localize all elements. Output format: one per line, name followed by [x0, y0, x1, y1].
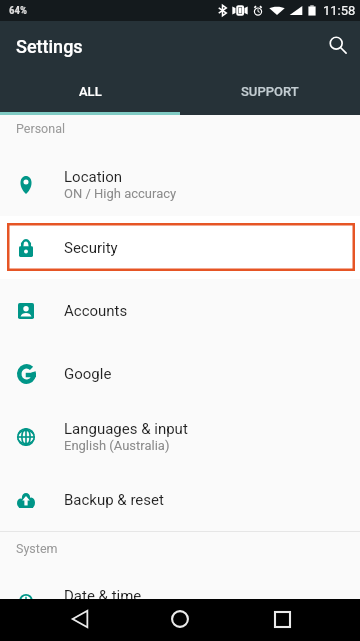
staticText: 11:58 [323, 3, 356, 18]
staticText: Accounts [64, 302, 128, 320]
button[interactable]: Search [316, 23, 360, 67]
staticText: SUPPORT [241, 84, 299, 99]
button[interactable]: Security [0, 216, 360, 279]
button[interactable]: Languages & input [0, 405, 360, 468]
button[interactable]: Home [150, 599, 210, 641]
button[interactable]: Back [50, 599, 110, 641]
button[interactable]: Backup & reset [0, 468, 360, 531]
staticText: System [16, 541, 58, 556]
staticText: Date & time [64, 587, 142, 599]
staticText: Security [64, 239, 118, 257]
button[interactable]: Location [0, 153, 360, 216]
staticText: Settings [16, 36, 83, 57]
button[interactable]: Recents [252, 599, 312, 641]
button[interactable]: Accounts [0, 279, 360, 342]
staticText: ALL [79, 84, 102, 99]
staticText: Personal [16, 121, 65, 136]
staticText: Backup & reset [64, 491, 164, 509]
button[interactable]: ALL [0, 71, 180, 115]
staticText: 64% [9, 4, 28, 17]
staticText: ON / High accuracy [64, 186, 177, 201]
button[interactable]: Google [0, 342, 360, 405]
staticText: Google [64, 365, 112, 383]
button[interactable]: Date & time [0, 587, 360, 599]
staticText: English (Australia) [64, 438, 170, 453]
button[interactable]: SUPPORT [180, 71, 360, 115]
staticText: Languages & input [64, 420, 188, 438]
staticText: Location [64, 168, 123, 186]
